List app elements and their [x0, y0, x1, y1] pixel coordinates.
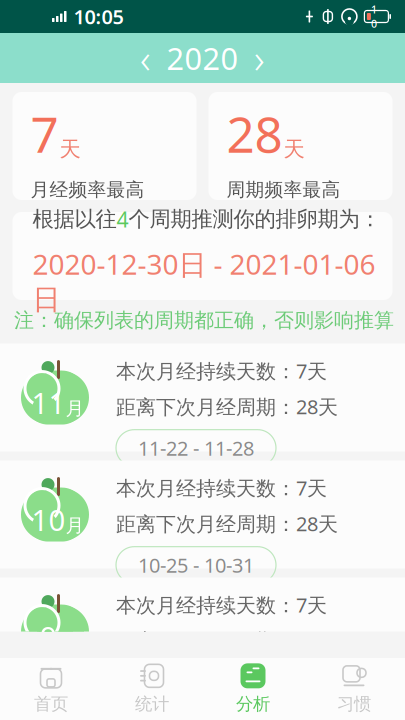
staticText: 11-22 - 11-28: [138, 435, 254, 461]
staticText: 距离下次月经周期：28天: [116, 393, 338, 420]
staticText: 28: [226, 101, 282, 166]
staticText: 统计: [135, 693, 169, 715]
staticText: 11: [31, 383, 65, 422]
staticText: 10: [371, 2, 377, 31]
staticText: 本次月经持续天数：7天: [116, 592, 327, 618]
staticText: 7: [30, 101, 58, 166]
staticText: 10:05: [73, 3, 123, 30]
staticText: 根据以往: [32, 206, 116, 232]
staticText: 距离下次月经周期：28天: [116, 510, 338, 537]
staticText: ›: [254, 31, 265, 84]
staticText: 个周期推测你的排卵期为：: [128, 206, 380, 232]
button[interactable]: Next year: [242, 36, 276, 80]
staticText: 10: [31, 500, 65, 539]
staticText: 2020-12-30日 - 2021-01-06日: [32, 245, 375, 317]
button[interactable]: 首页: [0, 659, 101, 719]
staticText: 注：确保列表的周期都正确，否则影响推算: [14, 308, 394, 333]
staticText: 天: [283, 136, 304, 162]
staticText: 4: [116, 205, 128, 233]
button[interactable]: 习惯: [303, 659, 404, 719]
staticText: 分析: [236, 693, 270, 715]
button[interactable]: Previous year: [128, 36, 162, 80]
staticText: 月: [57, 631, 76, 654]
staticText: 月: [65, 514, 84, 537]
button[interactable]: 9: [0, 578, 405, 648]
staticText: ‹: [140, 31, 151, 84]
staticText: 本次月经持续天数：7天: [116, 475, 327, 501]
staticText: 月: [65, 397, 84, 420]
button[interactable]: 统计: [101, 659, 202, 719]
button[interactable]: 分析: [202, 659, 303, 719]
staticText: 习惯: [337, 693, 371, 715]
button[interactable]: 11: [0, 344, 405, 452]
staticText: 月经频率最高: [30, 178, 144, 201]
staticText: 首页: [34, 693, 68, 715]
staticText: 2020: [166, 38, 238, 78]
staticText: 10-25 - 10-31: [138, 552, 254, 578]
staticText: 天: [59, 136, 80, 162]
staticText: 距离下次月经周期：28天: [116, 627, 338, 654]
staticText: 9: [40, 617, 57, 656]
staticText: 本次月经持续天数：7天: [116, 358, 327, 384]
staticText: 周期频率最高: [226, 178, 340, 201]
button[interactable]: 10: [0, 461, 405, 569]
